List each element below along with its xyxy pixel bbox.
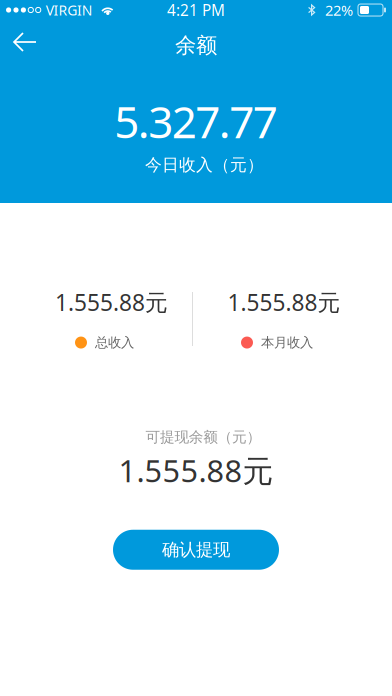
staticText: 可提现余额（元） xyxy=(146,428,261,446)
staticText: 总收入 xyxy=(95,334,134,351)
button[interactable]: Back xyxy=(0,22,50,62)
staticText: 5.327.77 xyxy=(114,92,278,150)
staticText: VIRGIN xyxy=(46,0,93,20)
staticText: 确认提现 xyxy=(162,539,230,560)
staticText: 余额 xyxy=(175,32,217,59)
staticText: 1.555.88元 xyxy=(227,287,340,317)
staticText: 今日收入（元） xyxy=(145,154,264,176)
staticText: 22% xyxy=(325,0,353,20)
staticText: 1.555.88元 xyxy=(118,450,273,491)
staticText: 1.555.88元 xyxy=(55,287,168,317)
button[interactable]: 确认提现 xyxy=(113,530,279,570)
staticText: 4:21 PM xyxy=(167,0,225,20)
staticText: 本月收入 xyxy=(261,334,313,351)
